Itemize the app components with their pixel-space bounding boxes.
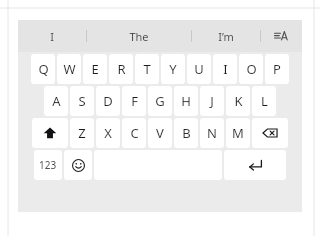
staticText: B <box>182 124 191 142</box>
button[interactable]: L <box>252 86 276 116</box>
button[interactable]: O <box>239 54 263 84</box>
button[interactable]: E <box>83 54 107 84</box>
staticText: K <box>234 92 243 110</box>
staticText: M <box>232 124 244 142</box>
button[interactable]: S <box>70 86 94 116</box>
button[interactable]: J <box>200 86 224 116</box>
button[interactable]: Backspace <box>252 118 288 148</box>
staticText: P <box>273 60 281 78</box>
staticText: O <box>246 60 257 78</box>
staticText: I <box>223 60 228 78</box>
staticText: V <box>156 124 164 142</box>
staticText: W <box>63 60 76 78</box>
button[interactable]: F <box>122 86 146 116</box>
button[interactable]: H <box>174 86 198 116</box>
button[interactable]: 123 <box>34 150 62 180</box>
staticText: T <box>143 60 151 78</box>
staticText: N <box>207 124 217 142</box>
button[interactable]: I <box>18 20 86 52</box>
button[interactable]: X <box>96 118 120 148</box>
button[interactable]: U <box>187 54 211 84</box>
button[interactable]: B <box>174 118 198 148</box>
button[interactable]: N <box>200 118 224 148</box>
button[interactable]: R <box>109 54 133 84</box>
staticText: A <box>52 92 61 110</box>
staticText: X <box>104 124 112 142</box>
button[interactable]: W <box>57 54 81 84</box>
staticText: R <box>117 60 126 78</box>
staticText: Z <box>78 124 86 142</box>
button[interactable]: V <box>148 118 172 148</box>
staticText: F <box>131 92 138 110</box>
button[interactable]: I <box>213 54 237 84</box>
staticText: The <box>129 29 149 44</box>
button[interactable]: Enter <box>224 150 286 180</box>
staticText: Y <box>169 60 177 78</box>
button[interactable]: Z <box>70 118 94 148</box>
button[interactable]: G <box>148 86 172 116</box>
button[interactable]: C <box>122 118 146 148</box>
button[interactable]: Shift <box>32 118 68 148</box>
staticText: C <box>130 124 139 142</box>
staticText: D <box>103 92 113 110</box>
staticText: S <box>78 92 86 110</box>
button[interactable]: P <box>265 54 289 84</box>
button[interactable]: Y <box>161 54 185 84</box>
staticText: G <box>155 92 165 110</box>
staticText: H <box>181 92 191 110</box>
staticText: I <box>50 29 54 44</box>
button[interactable]: T <box>135 54 159 84</box>
staticText: J <box>210 92 214 110</box>
button[interactable]: A <box>44 86 68 116</box>
button[interactable]: Q <box>31 54 55 84</box>
staticText: L <box>261 92 268 110</box>
button[interactable]: D <box>96 86 120 116</box>
button[interactable]: M <box>226 118 250 148</box>
staticText: 123 <box>39 158 57 172</box>
button[interactable]: Input settings <box>261 20 301 52</box>
button[interactable]: The <box>87 20 191 52</box>
staticText: E <box>91 60 99 78</box>
button[interactable]: K <box>226 86 250 116</box>
staticText: I’m <box>218 29 234 44</box>
staticText: Q <box>38 60 49 78</box>
button[interactable]: Emoji <box>64 150 92 180</box>
staticText: U <box>194 60 204 78</box>
button[interactable]: I’m <box>192 20 260 52</box>
